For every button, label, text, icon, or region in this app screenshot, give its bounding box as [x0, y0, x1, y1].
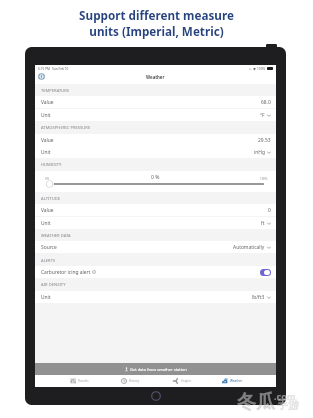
staticText: 6:15 PM — [38, 67, 50, 71]
button[interactable]: Engine — [156, 375, 207, 387]
staticText: Sun Feb 10 — [52, 67, 69, 71]
button[interactable]: App info — [38, 73, 45, 80]
staticText: ALTITUDE — [41, 196, 61, 202]
staticText: Get data from weather station — [130, 367, 187, 372]
staticText: 29.53 — [258, 137, 271, 144]
staticText: WEATHER DATA — [41, 233, 71, 239]
button[interactable]: Value — [35, 134, 276, 146]
staticText: Value — [41, 137, 54, 144]
staticText: History — [129, 379, 140, 383]
staticText: 0 % — [151, 174, 160, 181]
staticText: inHg — [254, 149, 265, 156]
button[interactable]: Unit — [35, 109, 276, 121]
staticText: lb/ft3 — [252, 294, 265, 301]
staticText: 冬瓜 — [237, 390, 275, 414]
staticText: ft — [261, 220, 265, 227]
button[interactable]: Get data from weather station — [35, 363, 276, 375]
staticText: ATMOSPHERIC PRESSURE — [41, 125, 91, 131]
staticText: Carburetor icing alert — [41, 269, 91, 276]
staticText: ALERTS — [41, 258, 56, 264]
staticText: 手游 — [277, 398, 299, 412]
staticText: 0 — [268, 207, 271, 214]
staticText: HUMIDITY — [41, 162, 62, 168]
staticText: 0% — [45, 177, 50, 181]
staticText: units (Imperial, Metric) — [89, 23, 224, 39]
staticText: 100% — [257, 67, 266, 71]
button[interactable]: Unit — [35, 217, 276, 229]
staticText: Value — [41, 99, 54, 106]
staticText: Value — [41, 207, 54, 214]
button[interactable]: Source — [35, 241, 276, 253]
staticText: Unit — [41, 294, 51, 301]
staticText: 100% — [260, 177, 268, 181]
staticText: .com — [274, 390, 296, 402]
staticText: Support different measure — [79, 7, 234, 23]
button[interactable]: Results — [54, 375, 105, 387]
staticText: 68.0 — [261, 99, 271, 106]
button[interactable]: Home — [151, 391, 161, 401]
staticText: Source — [41, 244, 57, 251]
button[interactable]: Carburetor icing alert — [35, 266, 276, 278]
button[interactable]: Weather — [207, 375, 258, 387]
button[interactable]: Unit — [35, 146, 276, 158]
staticText: Unit — [41, 112, 51, 119]
button[interactable]: History — [105, 375, 156, 387]
button[interactable]: Unit — [35, 291, 276, 303]
staticText: Weather — [146, 74, 165, 80]
button[interactable] — [260, 269, 271, 276]
button[interactable]: Value — [35, 96, 276, 108]
staticText: Engine — [181, 379, 191, 383]
staticText: TEMPERATURE — [41, 88, 70, 94]
staticText: Unit — [41, 220, 51, 227]
staticText: Results — [78, 379, 89, 383]
button[interactable]: Value — [35, 204, 276, 216]
staticText: AIR DENSITY — [41, 282, 66, 288]
staticText: °F — [260, 112, 265, 119]
staticText: Weather — [230, 379, 243, 383]
button[interactable] — [35, 171, 276, 192]
staticText: Automatically — [233, 244, 265, 251]
staticText: Unit — [41, 149, 51, 156]
